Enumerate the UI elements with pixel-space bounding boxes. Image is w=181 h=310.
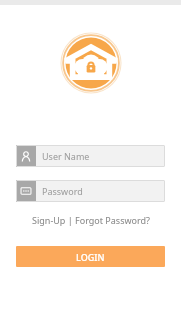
- button[interactable]: User name: [16, 145, 165, 167]
- button[interactable]: Password: [16, 180, 165, 202]
- staticText: User Name: [42, 150, 90, 162]
- staticText: LOGIN: [76, 251, 105, 263]
- other: Password: [16, 180, 36, 202]
- button[interactable]: Sign-Up | Forgot Password?: [16, 214, 165, 226]
- staticText: Password: [42, 185, 83, 197]
- staticText: Sign-Up | Forgot Password?: [32, 214, 150, 226]
- button[interactable]: LOGIN: [16, 246, 165, 267]
- other: User name: [16, 145, 36, 167]
